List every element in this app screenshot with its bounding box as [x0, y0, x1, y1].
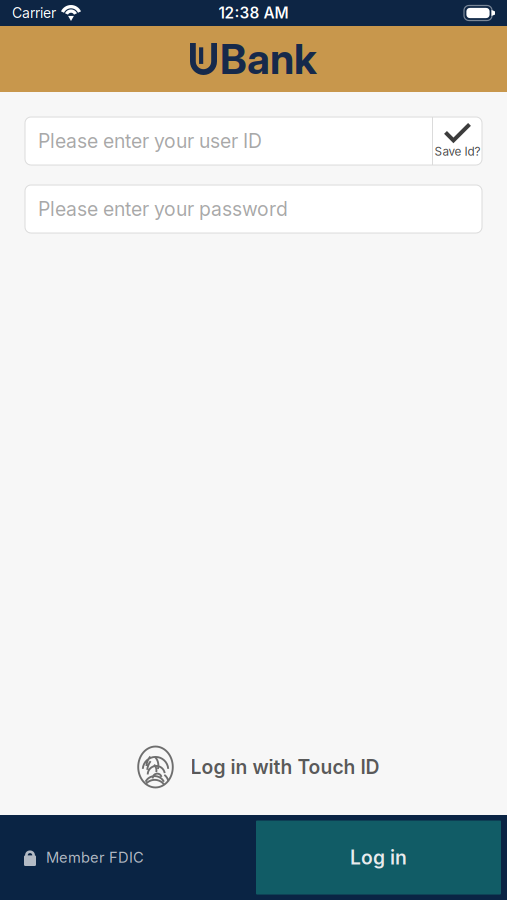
- button[interactable]: Log in: [256, 820, 501, 894]
- staticText: Save Id?: [434, 144, 480, 159]
- staticText: Please enter your user ID: [38, 129, 262, 153]
- staticText: Member FDIC: [46, 849, 144, 866]
- staticText: Log in: [350, 846, 407, 869]
- staticText: Please enter your password: [38, 197, 288, 221]
- staticText: Log in with Touch ID: [190, 755, 379, 779]
- staticText: Bank: [220, 34, 317, 84]
- staticText: 12:38 AM: [218, 4, 288, 22]
- staticText: Carrier: [12, 4, 56, 21]
- button[interactable]: Save Id?: [433, 117, 482, 165]
- button[interactable]: Log in with Touch ID: [127, 745, 379, 789]
